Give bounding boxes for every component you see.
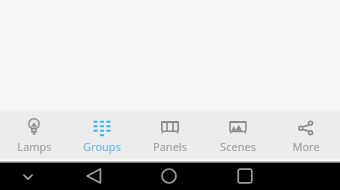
- button[interactable]: Lamps: [0, 112, 68, 159]
- button[interactable]: More: [272, 112, 340, 159]
- button[interactable]: Panels: [136, 112, 204, 159]
- staticText: More: [292, 139, 320, 154]
- staticText: Panels: [153, 139, 187, 154]
- staticText: Scenes: [220, 139, 256, 154]
- button[interactable]: Back: [81, 163, 107, 189]
- button[interactable]: Groups: [68, 112, 136, 159]
- staticText: Groups: [83, 139, 121, 154]
- button[interactable]: Hide keyboard: [15, 163, 41, 189]
- button[interactable]: Home: [156, 163, 182, 189]
- button[interactable]: Recents: [232, 163, 258, 189]
- staticText: Lamps: [17, 139, 52, 154]
- button[interactable]: Scenes: [204, 112, 272, 159]
